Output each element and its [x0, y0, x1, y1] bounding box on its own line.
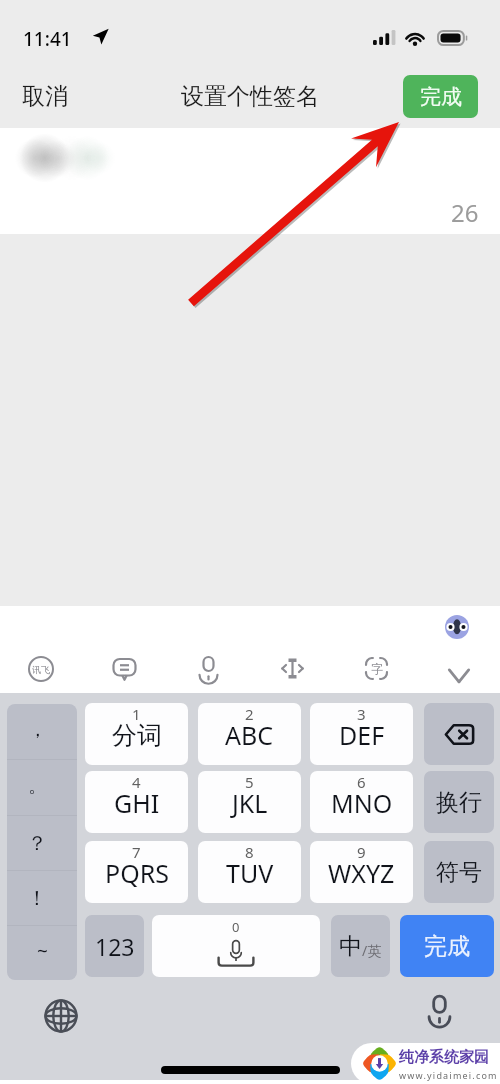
button[interactable]: Space [152, 915, 320, 977]
staticText: 换行 [436, 788, 482, 817]
staticText: PQRS [105, 856, 169, 890]
staticText: 5 [245, 772, 254, 792]
staticText: 0 [232, 918, 240, 936]
staticText: 11:41 [23, 26, 72, 52]
staticText: MNO [331, 786, 393, 820]
staticText: ！ [27, 886, 47, 911]
staticText: 4 [132, 772, 141, 792]
button[interactable]: Delete [424, 703, 494, 765]
staticText: 2 [245, 704, 254, 724]
staticText: 讯飞 [32, 664, 50, 675]
staticText: 。 [28, 774, 47, 798]
button[interactable]: 123 [85, 915, 144, 977]
button[interactable]: 。 [7, 760, 77, 815]
button[interactable]: Change keyboard language [44, 999, 78, 1033]
button[interactable]: Xunfei input method [28, 656, 54, 682]
staticText: 26 [451, 196, 479, 229]
button[interactable]: Move cursor [280, 656, 305, 681]
staticText: TUV [226, 856, 274, 890]
button[interactable]: ！ [7, 871, 77, 925]
button[interactable]: 取消 [14, 73, 76, 120]
button[interactable]: 3 [310, 703, 413, 765]
staticText: 123 [95, 931, 135, 962]
staticText: ~ [37, 938, 48, 964]
staticText: 3 [357, 704, 366, 724]
button[interactable]: Hide keyboard [448, 660, 470, 682]
staticText: 8 [245, 842, 254, 862]
button[interactable]: 8 [198, 841, 301, 903]
button[interactable]: 中 [331, 915, 390, 977]
button[interactable]: 1 [85, 703, 188, 765]
staticText: DEF [339, 718, 385, 752]
button[interactable]: Voice input [196, 656, 221, 681]
staticText: 分词 [112, 720, 162, 751]
staticText: 7 [132, 842, 141, 862]
button[interactable]: 符号 [424, 841, 494, 903]
staticText: 符号 [436, 858, 482, 887]
button[interactable]: Assistant [445, 615, 469, 639]
button[interactable]: 完成 [403, 75, 478, 118]
button[interactable]: ， [7, 704, 77, 759]
staticText: ABC [225, 718, 274, 752]
button[interactable]: 换行 [424, 771, 494, 833]
button[interactable]: 4 [85, 771, 188, 833]
staticText: 6 [357, 772, 366, 792]
staticText: ？ [27, 831, 47, 856]
button[interactable]: 9 [310, 841, 413, 903]
staticText: 纯净系统家园 [399, 1048, 489, 1067]
staticText: /英 [362, 941, 382, 960]
staticText: ， [28, 718, 47, 742]
staticText: WXYZ [328, 856, 395, 890]
button[interactable]: 5 [198, 771, 301, 833]
button[interactable]: ~ [7, 926, 77, 980]
button[interactable]: 6 [310, 771, 413, 833]
button[interactable]: Phrases [112, 656, 137, 681]
staticText: 完成 [420, 84, 462, 110]
staticText: 1 [132, 704, 141, 724]
button[interactable]: 完成 [400, 915, 494, 977]
staticText: 完成 [424, 932, 470, 961]
button[interactable]: Voice input [425, 995, 454, 1024]
staticText: 取消 [22, 82, 68, 111]
staticText: JKL [232, 786, 268, 820]
staticText: 设置个性签名 [181, 82, 319, 111]
button[interactable]: 2 [198, 703, 301, 765]
staticText: 9 [357, 842, 366, 862]
staticText: www.yidaimei.com [399, 1069, 498, 1081]
button[interactable]: ？ [7, 816, 77, 870]
staticText: 字 [371, 661, 383, 676]
button[interactable]: 7 [85, 841, 188, 903]
button[interactable]: Handwriting [364, 656, 389, 681]
staticText: 中 [339, 932, 362, 961]
staticText: GHI [114, 786, 160, 820]
